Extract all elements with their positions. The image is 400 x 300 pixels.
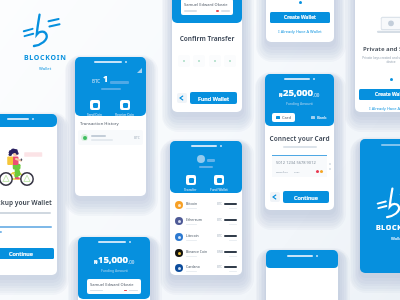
staticText: Connect your Card [265, 134, 334, 143]
staticText: 5012 1234 5678 9012 [276, 160, 316, 165]
button[interactable]: Receive Coin [115, 100, 134, 116]
staticText: Private keys created and stored on your … [360, 56, 400, 64]
staticText: Wallet [39, 66, 52, 72]
staticText: BTC [217, 218, 223, 222]
staticText: BTC [92, 78, 101, 84]
button[interactable]: I Already Have A Wallet [355, 106, 400, 111]
staticText: Backup your Wallet [0, 198, 57, 207]
button[interactable]: Create Wallet [359, 89, 400, 100]
button[interactable]: Fund Wallet [210, 175, 228, 192]
staticText: BTC [217, 202, 223, 206]
staticText: Continue [9, 250, 33, 257]
staticText: Samuel Edward Okezie [90, 282, 134, 287]
button[interactable]: I Already Have A Wallet [266, 29, 334, 34]
staticText: Fund Wallet [210, 188, 228, 192]
staticText: Cardano [186, 264, 200, 269]
staticText: Receive Coin [115, 113, 134, 116]
staticText: 25,000 [283, 86, 313, 99]
button[interactable]: Bitcoin [175, 197, 237, 213]
button[interactable]: Litecoin [175, 229, 237, 245]
staticText: Create Wallet [284, 14, 316, 21]
staticText: Wallet [391, 236, 400, 242]
staticText: Transfer [184, 188, 197, 192]
button[interactable]: Continue [283, 191, 329, 203]
staticText: Funding Amount [101, 268, 128, 273]
button[interactable]: Create Wallet [270, 12, 330, 23]
button[interactable]: Fund Wallet [190, 92, 237, 104]
button[interactable]: Ethereum [175, 213, 237, 229]
staticText: ₦ [94, 258, 98, 266]
staticText: Transaction History [80, 121, 119, 127]
staticText: BNB [217, 250, 223, 254]
staticText: BTC [217, 265, 223, 269]
staticText: BLOCKOIN [24, 53, 67, 63]
staticText: ₦ [279, 91, 283, 99]
button[interactable]: Cardano [175, 261, 237, 275]
staticText: Send Coin [87, 113, 103, 116]
staticText: Bitcoin [186, 201, 198, 206]
staticText: 15,000 [98, 253, 128, 266]
button[interactable]: Send Coin [87, 100, 103, 116]
staticText: 1 [103, 72, 109, 85]
staticText: .00 [128, 259, 135, 265]
staticText: cvv [294, 170, 300, 173]
button[interactable]: Card [276, 115, 291, 120]
staticText: .00 [313, 92, 320, 98]
staticText: Continue [294, 194, 318, 201]
staticText: Binance Coin [186, 249, 208, 254]
staticText: BTC [217, 234, 223, 238]
staticText: Ethereum [186, 217, 202, 222]
staticText: BLOCKOIN [376, 223, 400, 233]
staticText: Funding Amount [286, 101, 313, 106]
button[interactable]: Back [270, 192, 280, 202]
staticText: Samuel Edward Okezie [184, 2, 228, 7]
staticText: Create Wallet [375, 91, 400, 98]
button[interactable]: BTC [78, 130, 143, 145]
staticText: BTC [134, 136, 140, 140]
staticText: mm/yy [276, 170, 288, 173]
button[interactable]: Wallet [137, 68, 142, 73]
button[interactable]: Binance Coin [175, 245, 237, 261]
button[interactable]: Back [177, 93, 187, 103]
staticText: Fund Wallet [198, 95, 230, 102]
staticText: Bank [317, 115, 327, 120]
staticText: Card [282, 115, 291, 120]
staticText: Private and Secure [355, 45, 400, 53]
button[interactable]: Transfer [184, 175, 197, 192]
button[interactable]: Continue [0, 248, 54, 259]
button[interactable]: Bank [311, 115, 327, 120]
staticText: Litecoin [186, 233, 199, 238]
staticText: Confirm Transfer [172, 34, 242, 43]
